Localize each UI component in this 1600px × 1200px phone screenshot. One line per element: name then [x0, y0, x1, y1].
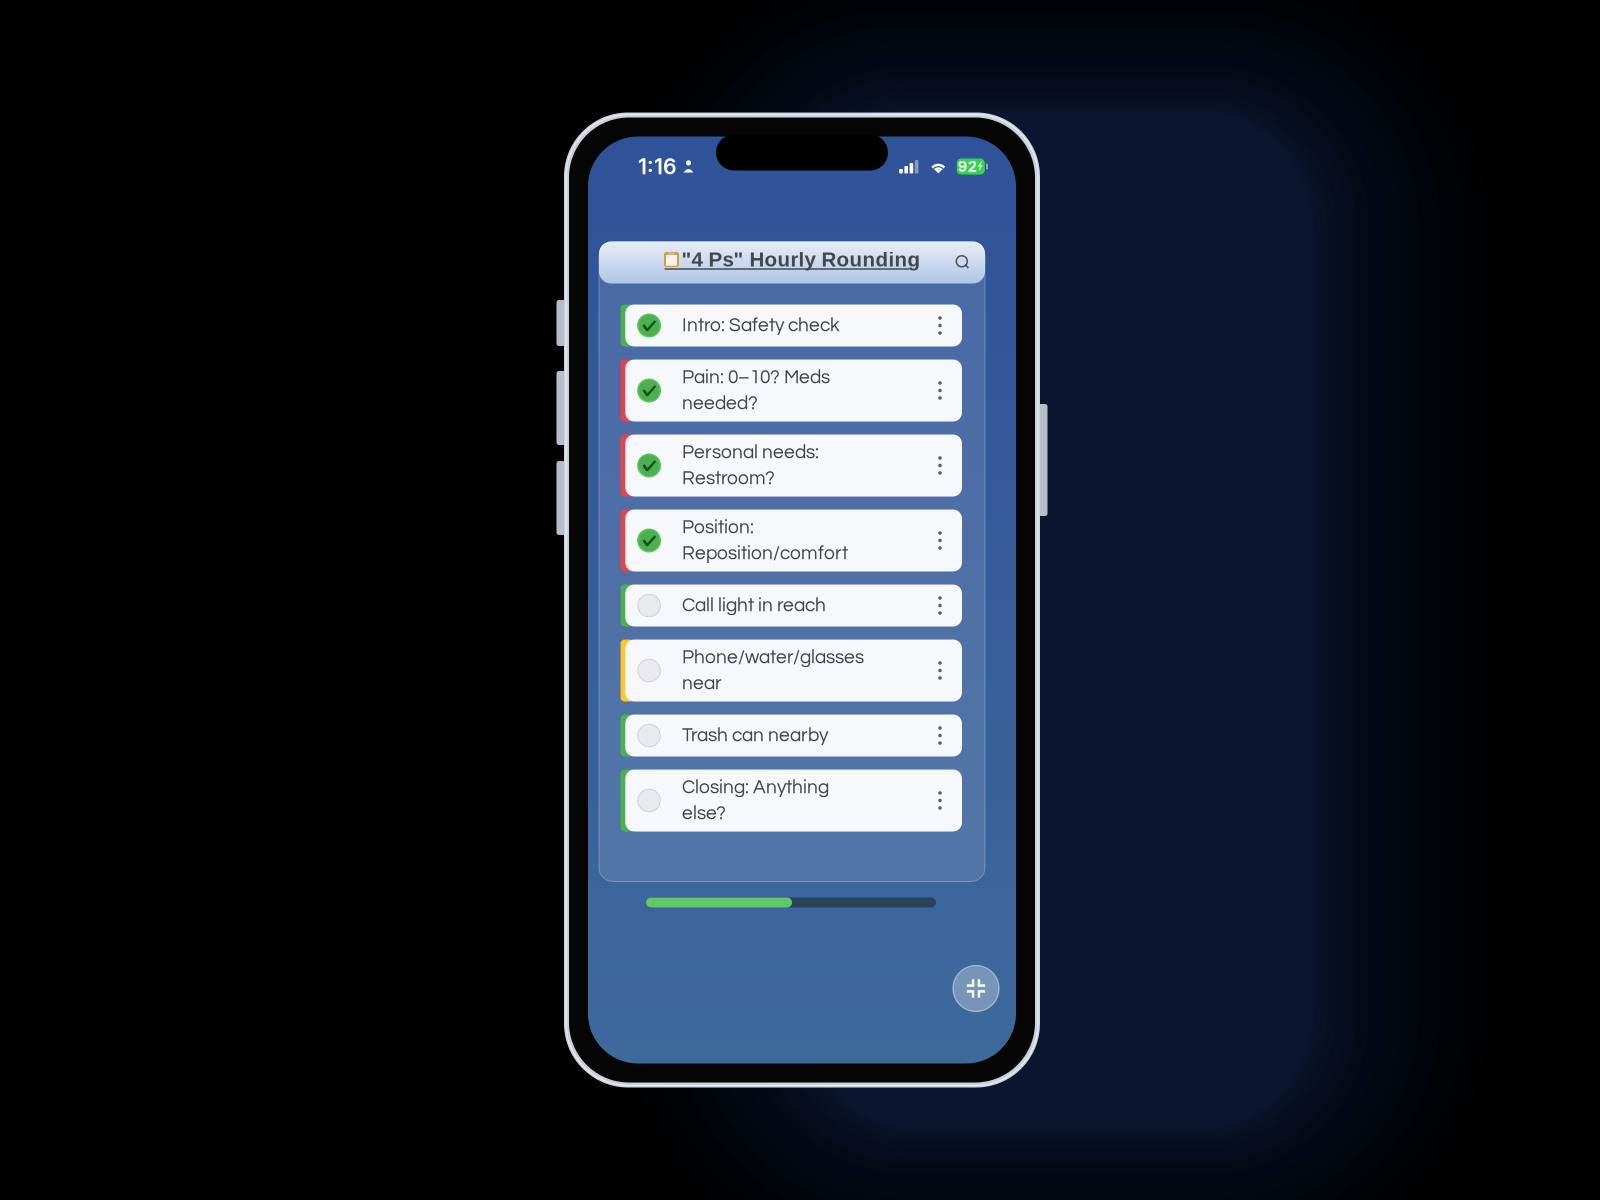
button[interactable]: Trash can nearby: [621, 714, 962, 756]
staticText: Intro: Safety check: [682, 316, 840, 335]
button[interactable]: Personal needs: Restroom?: [621, 434, 962, 496]
button[interactable]: Call light in reach: [621, 584, 962, 626]
button[interactable]: Pain: 0–10? Meds needed?: [621, 359, 962, 421]
button[interactable]: Search: [947, 246, 979, 278]
staticText: Phone/water/glasses near: [682, 648, 864, 693]
staticText: Pain: 0–10? Meds needed?: [682, 368, 830, 413]
staticText: Trash can nearby: [682, 726, 828, 745]
button[interactable]: Position: Reposition/comfort: [621, 509, 962, 571]
staticText: 92: [958, 158, 977, 175]
button[interactable]: Intro: Safety check: [621, 304, 962, 346]
staticText: Closing: Anything else?: [682, 778, 829, 823]
staticText: Personal needs: Restroom?: [682, 443, 819, 488]
button[interactable]: Phone/water/glasses near: [621, 639, 962, 701]
staticText: "4 Ps" Hourly Rounding: [681, 248, 920, 271]
staticText: Position: Reposition/comfort: [682, 518, 848, 563]
button[interactable]: Exit full screen: [950, 962, 1002, 1014]
staticText: Call light in reach: [682, 596, 826, 615]
staticText: 1:16: [638, 154, 677, 179]
button[interactable]: Closing: Anything else?: [621, 769, 962, 831]
